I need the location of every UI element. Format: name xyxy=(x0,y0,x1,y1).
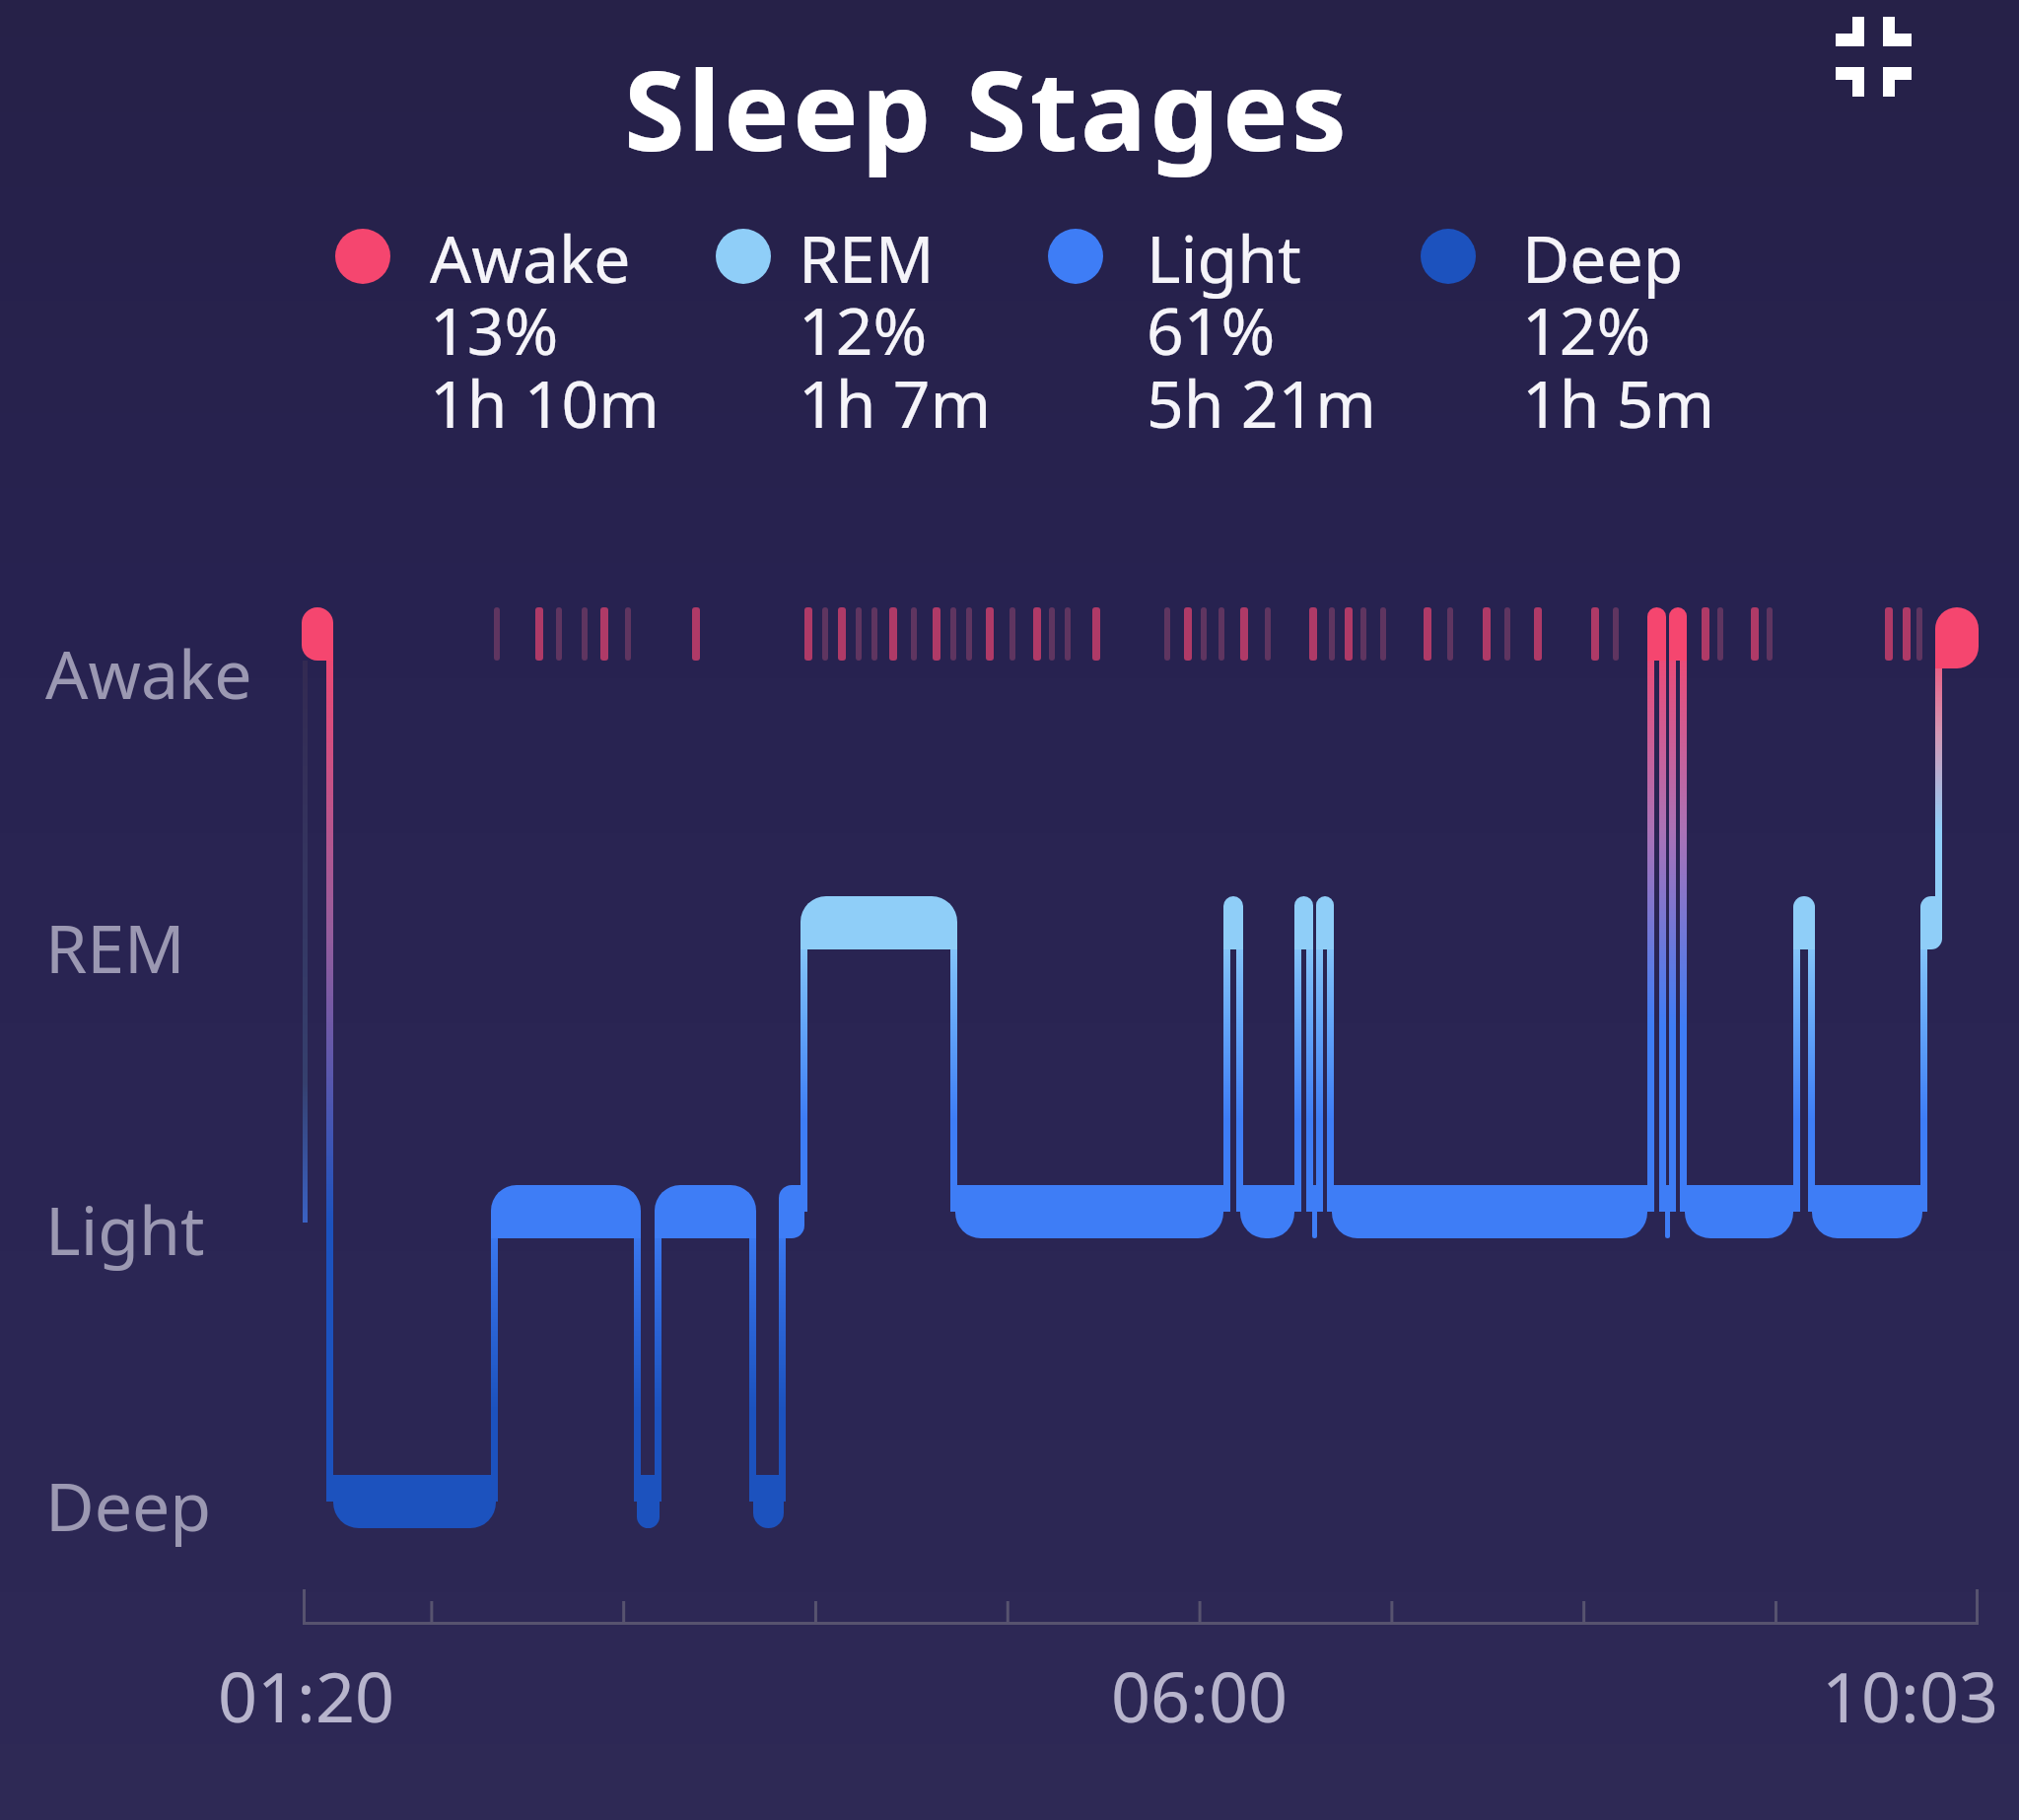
staticText: Sleep Stages xyxy=(624,33,1350,183)
staticText: 06:00 xyxy=(1111,1648,1288,1742)
button[interactable] xyxy=(1421,229,1476,284)
staticText: Light 61% 5h 21m xyxy=(1147,213,1376,447)
staticText: Deep xyxy=(45,1459,212,1551)
staticText: Awake 13% 1h 10m xyxy=(430,213,660,447)
staticText: 01:20 xyxy=(218,1648,394,1742)
staticText: Awake xyxy=(45,627,252,719)
staticText: REM xyxy=(45,901,185,993)
staticText: Deep 12% 1h 5m xyxy=(1522,213,1715,447)
button[interactable] xyxy=(1048,229,1103,284)
staticText: Light xyxy=(45,1183,205,1275)
staticText: 10:03 xyxy=(1822,1648,1998,1742)
button[interactable] xyxy=(1812,0,1930,118)
staticText: REM 12% 1h 7m xyxy=(799,213,992,447)
button[interactable] xyxy=(335,229,390,284)
button[interactable] xyxy=(716,229,771,284)
